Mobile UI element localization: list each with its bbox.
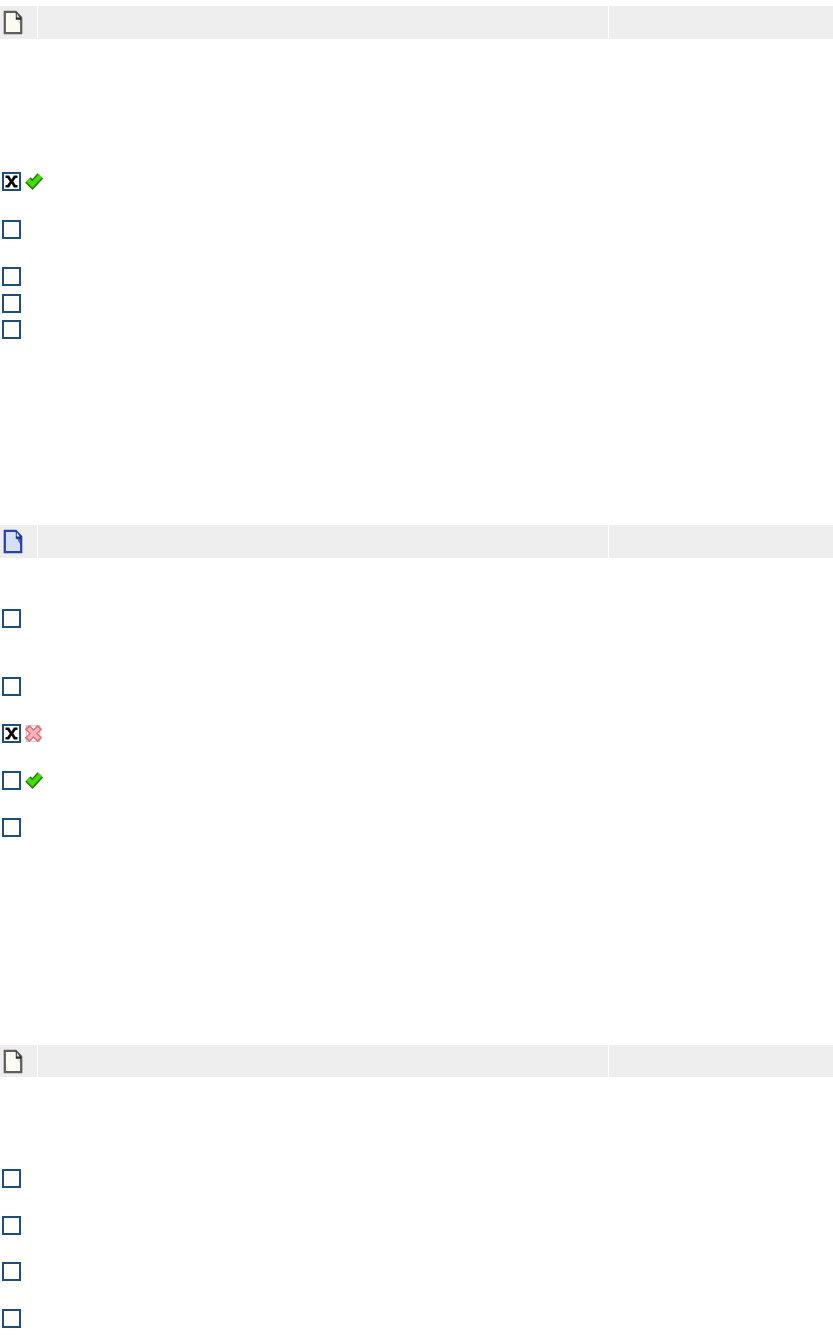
button[interactable]: Open document <box>0 1045 37 1077</box>
button[interactable]: Open document <box>0 6 37 39</box>
button[interactable]: Failed <box>25 725 42 742</box>
button[interactable]: Passed <box>26 772 42 786</box>
button[interactable]: Passed <box>26 173 42 187</box>
button[interactable]: Checked <box>4 174 19 189</box>
button[interactable]: Checked <box>4 726 19 741</box>
button[interactable]: Open document <box>0 525 37 558</box>
